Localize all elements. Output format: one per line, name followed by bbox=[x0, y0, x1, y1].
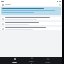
button[interactable] bbox=[1, 22, 61, 25]
button[interactable] bbox=[1, 27, 61, 30]
button[interactable]: Search bbox=[58, 3, 61, 6]
button[interactable]: Home bbox=[12, 57, 17, 64]
button[interactable] bbox=[1, 17, 61, 20]
staticText: Home bbox=[5, 3, 11, 6]
staticText: Explore bbox=[29, 60, 34, 64]
button[interactable]: Menu bbox=[1, 3, 4, 6]
button[interactable] bbox=[1, 7, 61, 15]
button[interactable]: Explore bbox=[29, 57, 34, 64]
staticText: Home bbox=[12, 61, 17, 63]
button[interactable]: Profile bbox=[45, 57, 50, 64]
staticText: Profile bbox=[45, 61, 50, 63]
